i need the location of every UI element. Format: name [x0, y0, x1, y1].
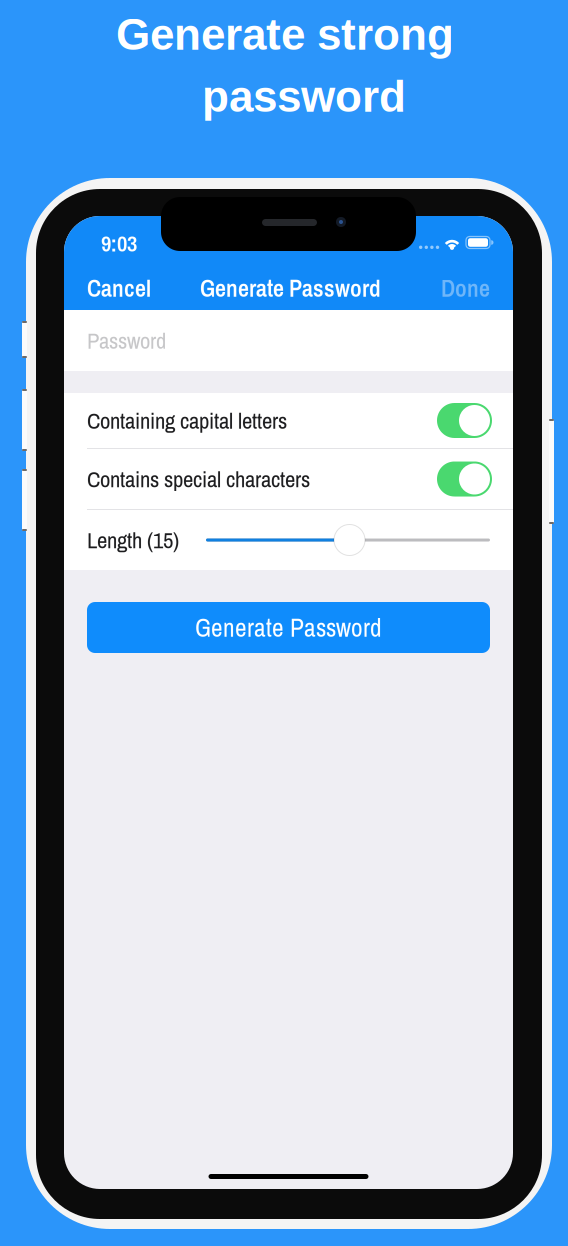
- button[interactable]: Containing capital letters: [64, 393, 513, 448]
- staticText: Password: [87, 325, 166, 356]
- button[interactable]: Contains special characters: [64, 449, 513, 509]
- staticText: Generate strong: [116, 10, 454, 59]
- button[interactable]: Cancel: [87, 266, 183, 310]
- staticText: Generate Password: [200, 272, 381, 304]
- staticText: 9:03: [101, 228, 137, 258]
- staticText: Length (15): [87, 525, 179, 555]
- staticText: password: [202, 72, 406, 121]
- button[interactable]: Generate Password: [87, 602, 490, 653]
- staticText: Done: [441, 272, 490, 304]
- staticText: Contains special characters: [87, 464, 310, 494]
- button[interactable]: Done: [414, 266, 490, 310]
- staticText: Generate Password: [195, 610, 382, 644]
- staticText: Cancel: [87, 272, 151, 304]
- staticText: Containing capital letters: [87, 405, 287, 436]
